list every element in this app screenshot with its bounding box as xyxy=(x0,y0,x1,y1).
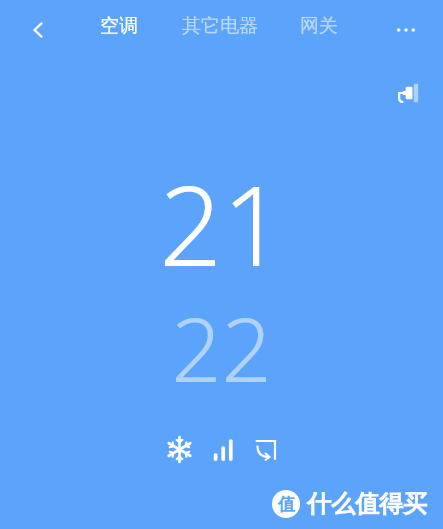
button[interactable]: Cool mode xyxy=(159,429,199,469)
staticText: 值 xyxy=(278,494,295,515)
button[interactable]: 空调 xyxy=(92,8,146,44)
button[interactable]: More options xyxy=(386,10,426,50)
button[interactable]: Fan speed xyxy=(202,429,242,469)
staticText: 什么值得买 xyxy=(307,489,427,519)
staticText: 网关 xyxy=(300,14,338,38)
staticText: 其它电器 xyxy=(182,14,258,38)
staticText: 空调 xyxy=(100,14,138,38)
button[interactable]: Power plug status xyxy=(390,76,424,110)
button[interactable]: 网关 xyxy=(292,8,346,44)
staticText: 21 xyxy=(159,148,285,298)
button[interactable]: Air swing xyxy=(245,429,285,469)
button[interactable]: Back xyxy=(18,10,58,50)
staticText: 22 xyxy=(171,288,272,408)
button[interactable]: 其它电器 xyxy=(174,8,266,44)
